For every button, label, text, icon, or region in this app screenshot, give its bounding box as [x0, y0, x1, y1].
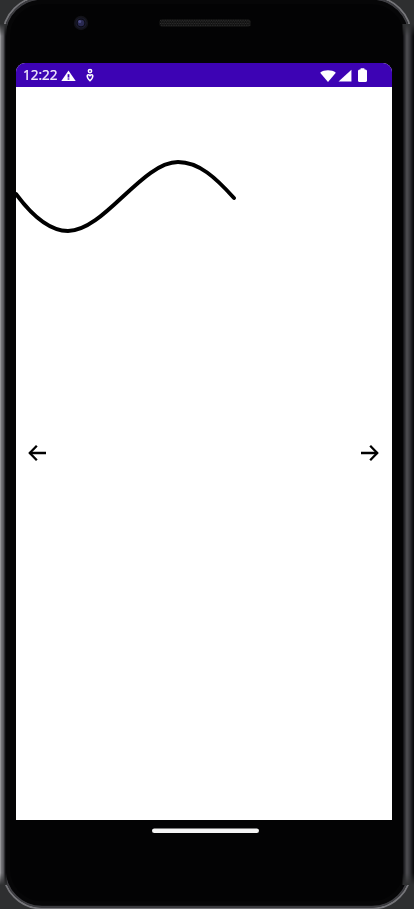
- staticText: 12:22: [23, 66, 58, 84]
- button[interactable]: Next: [349, 433, 389, 473]
- button[interactable]: Previous: [17, 433, 57, 473]
